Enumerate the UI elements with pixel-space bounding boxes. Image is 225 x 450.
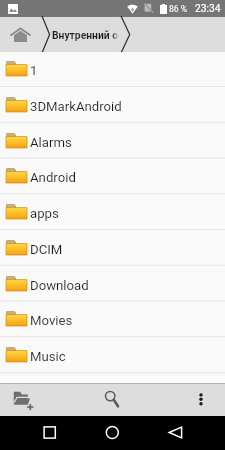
staticText: 1: [30, 63, 38, 78]
button[interactable]: Android: [0, 159, 225, 195]
button[interactable]: Search: [92, 383, 128, 416]
staticText: Download: [30, 278, 89, 293]
button[interactable]: Movies: [0, 302, 225, 338]
button[interactable]: Home: [0, 17, 40, 52]
button[interactable]: More options: [183, 383, 219, 416]
button[interactable]: Music: [0, 338, 225, 374]
staticText: 23:34: [195, 3, 221, 15]
staticText: DCIM: [30, 242, 63, 257]
staticText: 86 %: [169, 4, 188, 14]
button[interactable]: Back: [143, 416, 207, 450]
button[interactable]: 1: [0, 52, 225, 88]
button[interactable]: Home: [80, 416, 144, 450]
button[interactable]: New folder: [2, 383, 44, 416]
button[interactable]: DCIM: [0, 231, 225, 267]
button[interactable]: Recents: [18, 416, 82, 450]
staticText: apps: [30, 206, 59, 221]
staticText: Movies: [30, 313, 73, 328]
button[interactable]: Download: [0, 267, 225, 303]
staticText: Music: [30, 349, 66, 364]
staticText: Android: [30, 170, 76, 185]
button[interactable]: Alarms: [0, 124, 225, 160]
button[interactable]: 3DMarkAndroid: [0, 88, 225, 124]
staticText: Alarms: [30, 135, 72, 150]
staticText: Внутренний общий н: [52, 29, 119, 41]
staticText: 3DMarkAndroid: [30, 99, 122, 114]
button[interactable]: apps: [0, 195, 225, 231]
button[interactable]: Внутренний общий н: [52, 17, 119, 52]
